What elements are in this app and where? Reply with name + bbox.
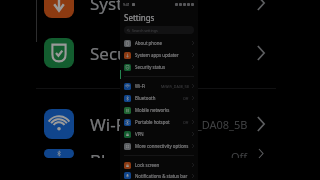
button[interactable]: Notifications & status bar [120,171,198,180]
button[interactable]: More connectivity options [120,140,198,152]
staticText: Blueto [90,149,231,158]
staticText: System [90,0,254,15]
button[interactable]: Blueto [30,149,282,158]
staticText: Security status [135,64,191,70]
staticText: Mobile networks [135,107,191,113]
staticText: Off [183,96,189,101]
staticText: VPN [135,131,191,137]
button[interactable]: Securi [30,28,282,78]
button[interactable]: VPN [120,128,198,140]
button[interactable]: Wi-Fi [120,80,198,92]
staticText: More connectivity options [135,143,191,149]
button[interactable]: Mobile networks [120,104,198,116]
staticText: Search settings [132,28,158,33]
button[interactable]: Wi-Fi [30,99,282,149]
staticText: MiWiFi_DA08_5B [161,84,189,89]
button[interactable]: System [30,0,282,28]
button[interactable]: Search settings [124,26,194,34]
staticText: 9:41 [123,2,130,7]
staticText: Bluetooth [135,95,183,101]
staticText: Securi [90,42,254,65]
button[interactable]: About phone [120,37,198,49]
staticText: Off [231,149,248,158]
button[interactable]: Lock screen [120,159,198,171]
staticText: Off [183,120,189,125]
staticText: Wi-Fi [90,113,190,136]
staticText: Wi-Fi [135,83,161,89]
button[interactable]: Security status [120,61,198,73]
staticText: K_DA08_5B [190,117,248,132]
button[interactable]: Portable hotspot [120,116,198,128]
staticText: System apps updater [135,52,191,58]
button[interactable]: System apps updater [120,49,198,61]
staticText: Lock screen [135,162,191,168]
staticText: Notifications & status bar [135,173,191,179]
staticText: Portable hotspot [135,119,183,125]
staticText: Settings [124,12,155,23]
button[interactable]: Bluetooth [120,92,198,104]
staticText: About phone [135,40,191,46]
